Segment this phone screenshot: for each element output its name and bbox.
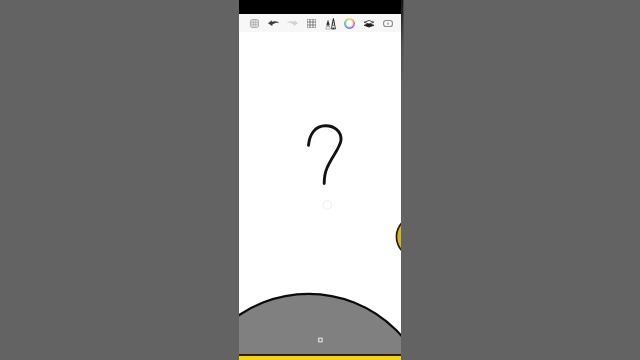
- button[interactable]: View options: [378, 14, 397, 32]
- button[interactable]: Redo: [283, 14, 302, 32]
- button[interactable]: Grid: [302, 14, 321, 32]
- button[interactable]: Layers: [359, 14, 378, 32]
- button[interactable]: Color palette: [340, 14, 359, 32]
- button[interactable]: Brushes: [321, 14, 340, 32]
- button[interactable]: Table: [245, 14, 264, 32]
- button[interactable]: Undo: [264, 14, 283, 32]
- button[interactable]: Drawing canvas: [239, 0, 401, 360]
